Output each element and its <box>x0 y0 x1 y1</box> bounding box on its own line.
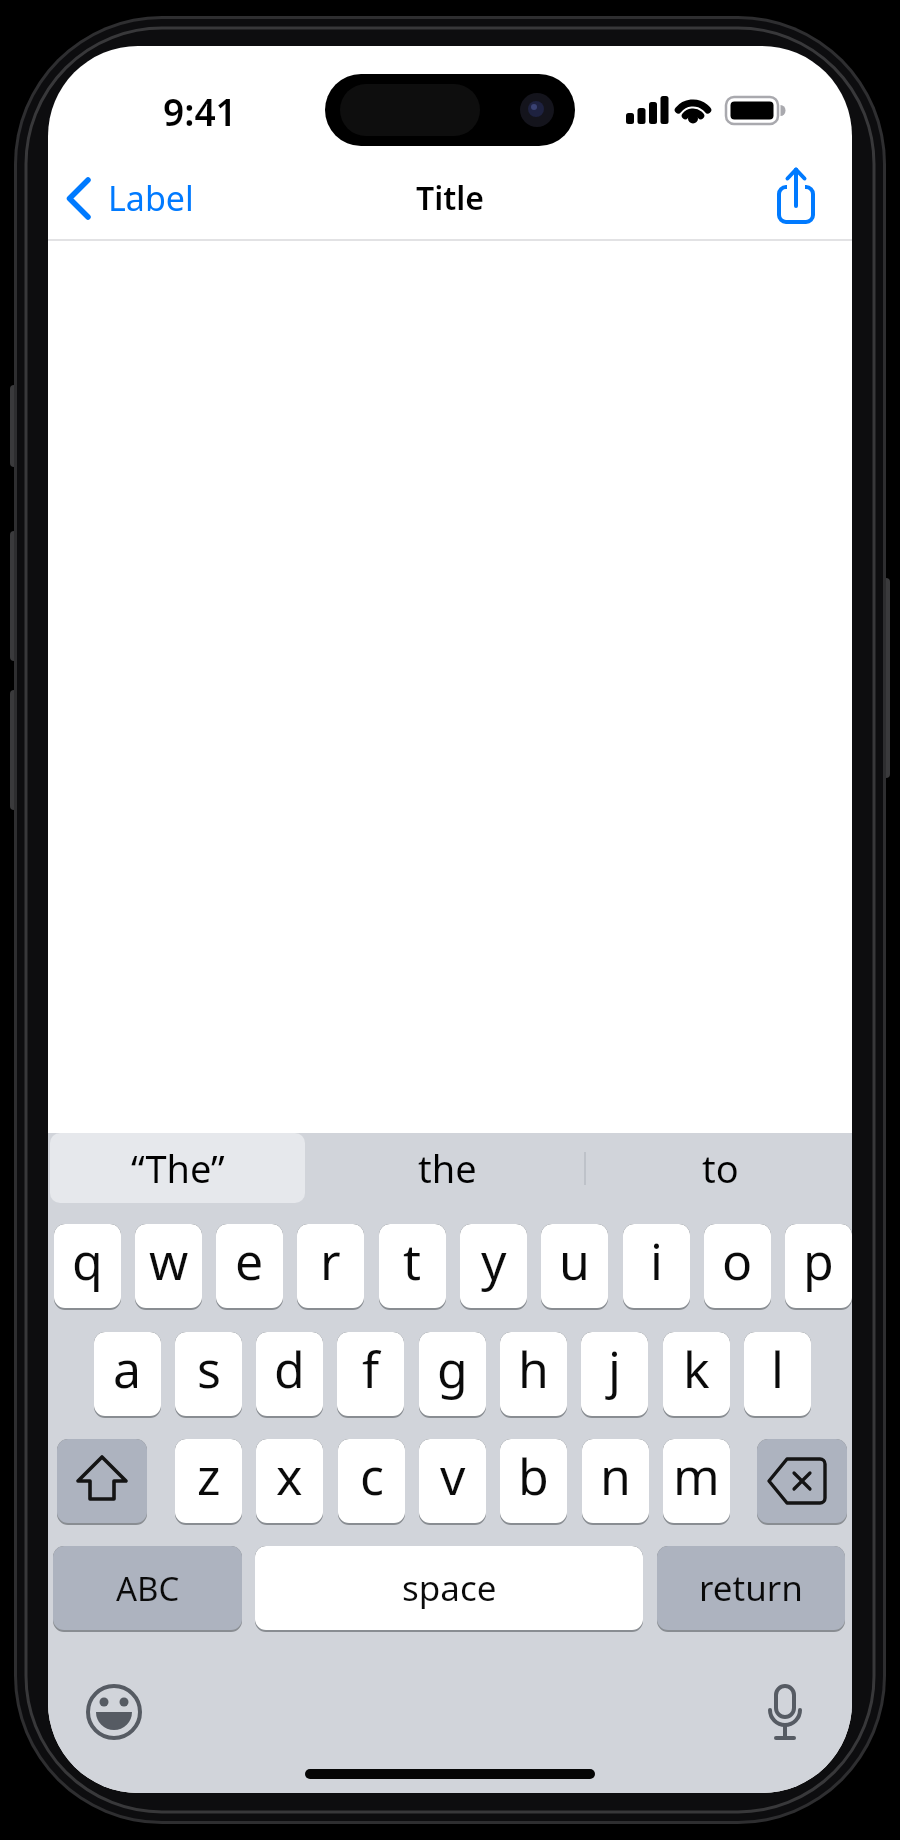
staticText: c <box>360 1442 384 1510</box>
button[interactable]: k <box>663 1332 730 1418</box>
button[interactable]: e <box>216 1224 283 1310</box>
button[interactable]: the <box>315 1133 580 1203</box>
button[interactable]: t <box>379 1224 446 1310</box>
staticText: h <box>518 1335 549 1403</box>
staticText: l <box>771 1335 784 1403</box>
staticText: d <box>274 1335 305 1403</box>
staticText: ABC <box>116 1566 180 1611</box>
staticText: space <box>402 1564 497 1612</box>
button[interactable] <box>755 1682 815 1742</box>
button[interactable]: m <box>663 1439 730 1525</box>
staticText: u <box>559 1227 590 1295</box>
button[interactable]: y <box>460 1224 527 1310</box>
staticText: return <box>699 1564 803 1612</box>
staticText: r <box>320 1227 341 1295</box>
button[interactable]: Label <box>60 172 210 224</box>
button[interactable]: x <box>256 1439 323 1525</box>
button[interactable]: u <box>541 1224 608 1310</box>
staticText: z <box>197 1442 221 1510</box>
button[interactable]: c <box>338 1439 405 1525</box>
staticText: a <box>113 1335 142 1403</box>
button[interactable]: return <box>657 1546 845 1632</box>
staticText: x <box>276 1442 303 1510</box>
staticText: to <box>702 1142 739 1194</box>
staticText: v <box>440 1442 466 1510</box>
button[interactable] <box>84 1682 144 1742</box>
staticText: s <box>197 1335 221 1403</box>
button[interactable]: l <box>744 1332 811 1418</box>
button[interactable]: b <box>500 1439 567 1525</box>
staticText: w <box>149 1227 189 1295</box>
staticText: k <box>683 1335 710 1403</box>
staticText: t <box>403 1227 422 1295</box>
staticText: m <box>673 1442 720 1510</box>
button[interactable]: p <box>785 1224 852 1310</box>
staticText: f <box>362 1335 380 1403</box>
button[interactable]: w <box>135 1224 202 1310</box>
staticText: i <box>650 1227 663 1295</box>
staticText: Label <box>108 175 194 221</box>
staticText: Title <box>416 176 485 220</box>
button[interactable]: s <box>175 1332 242 1418</box>
button[interactable] <box>757 1439 847 1525</box>
staticText: g <box>437 1335 468 1403</box>
button[interactable]: a <box>94 1332 161 1418</box>
button[interactable]: f <box>337 1332 404 1418</box>
button[interactable] <box>57 1439 147 1525</box>
button[interactable]: z <box>175 1439 242 1525</box>
staticText: 9:41 <box>163 86 237 132</box>
button[interactable]: to <box>590 1133 850 1203</box>
button[interactable]: o <box>704 1224 771 1310</box>
staticText: “The” <box>131 1142 225 1194</box>
button[interactable]: space <box>255 1546 643 1632</box>
button[interactable]: i <box>623 1224 690 1310</box>
staticText: n <box>600 1442 631 1510</box>
staticText: the <box>418 1142 477 1194</box>
staticText: b <box>518 1442 549 1510</box>
staticText: q <box>72 1227 103 1295</box>
staticText: e <box>235 1227 264 1295</box>
button[interactable]: d <box>256 1332 323 1418</box>
staticText: j <box>608 1335 621 1403</box>
button[interactable] <box>765 160 845 236</box>
button[interactable]: h <box>500 1332 567 1418</box>
staticText: p <box>803 1227 834 1295</box>
button[interactable]: r <box>297 1224 364 1310</box>
staticText: o <box>722 1227 753 1295</box>
button[interactable]: ABC <box>53 1546 242 1632</box>
button[interactable]: j <box>581 1332 648 1418</box>
button[interactable]: g <box>419 1332 486 1418</box>
button[interactable]: q <box>54 1224 121 1310</box>
button[interactable]: n <box>582 1439 649 1525</box>
button[interactable]: “The” <box>50 1133 305 1203</box>
staticText: y <box>481 1227 507 1295</box>
button[interactable]: v <box>419 1439 486 1525</box>
